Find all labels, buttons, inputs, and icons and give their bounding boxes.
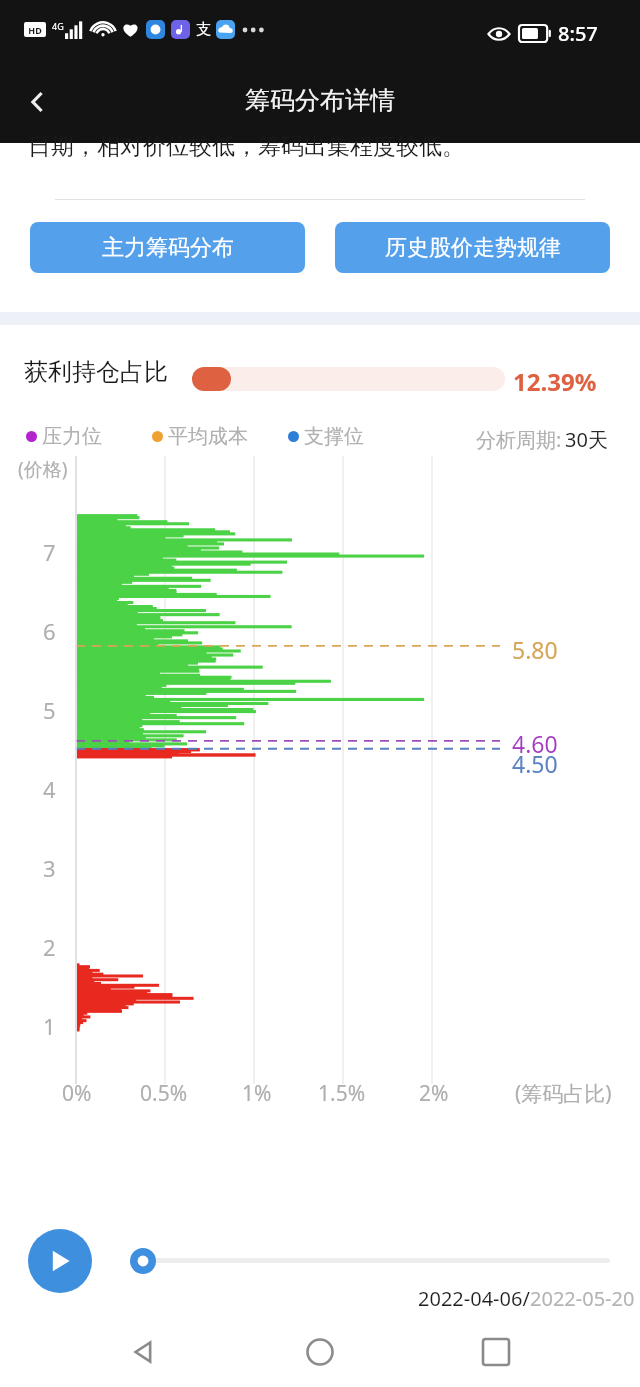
staticText: 压力位 (42, 424, 102, 449)
staticText: 6 (43, 616, 56, 646)
button[interactable]: Back (112, 1320, 176, 1384)
staticText: 筹码分布详情 (0, 85, 640, 116)
staticText: 4 (43, 774, 56, 804)
staticText: 支 (196, 20, 211, 39)
staticText: 3 (43, 853, 56, 883)
staticText: 30天 (565, 426, 608, 453)
button[interactable]: Recent apps (464, 1320, 528, 1384)
staticText: 0.5% (140, 1079, 188, 1108)
staticText: 2022-04-06/ (418, 1285, 530, 1312)
button[interactable]: 历史股价走势规律 (335, 222, 610, 273)
staticText: 日期，相对价位较低，筹码出集程度较低。 (28, 132, 465, 161)
staticText: 5.80 (512, 634, 558, 665)
staticText: 2022-05-20 (530, 1285, 635, 1312)
staticText: 2% (419, 1079, 449, 1108)
staticText: 4.50 (512, 748, 558, 779)
staticText: 7 (43, 537, 56, 567)
button[interactable]: Back (8, 72, 68, 132)
button[interactable]: Play (28, 1229, 92, 1293)
staticText: 历史股价走势规律 (385, 234, 561, 262)
staticText: 12.39% (513, 365, 597, 398)
staticText: (筹码占比) (515, 1079, 612, 1108)
staticText: 分析周期: (476, 426, 567, 453)
staticText: (价格) (18, 456, 68, 482)
staticText: 2 (43, 932, 56, 962)
staticText: 主力筹码分布 (102, 234, 234, 262)
staticText: 4G (52, 20, 64, 32)
button[interactable]: 主力筹码分布 (30, 222, 305, 273)
staticText: 1.5% (318, 1079, 366, 1108)
staticText: 获利持仓占比 (24, 357, 168, 387)
staticText: 8:57 (558, 20, 598, 47)
button[interactable]: Playback position (130, 1248, 156, 1274)
staticText: 1 (43, 1011, 56, 1041)
staticText: 4.60 (512, 728, 558, 759)
staticText: 支撑位 (304, 424, 364, 449)
button[interactable]: Home (288, 1320, 352, 1384)
staticText: 1% (242, 1079, 272, 1108)
staticText: 5 (43, 695, 56, 725)
staticText: 平均成本 (168, 424, 248, 449)
staticText: HD (28, 24, 42, 36)
staticText: 0% (62, 1079, 92, 1108)
